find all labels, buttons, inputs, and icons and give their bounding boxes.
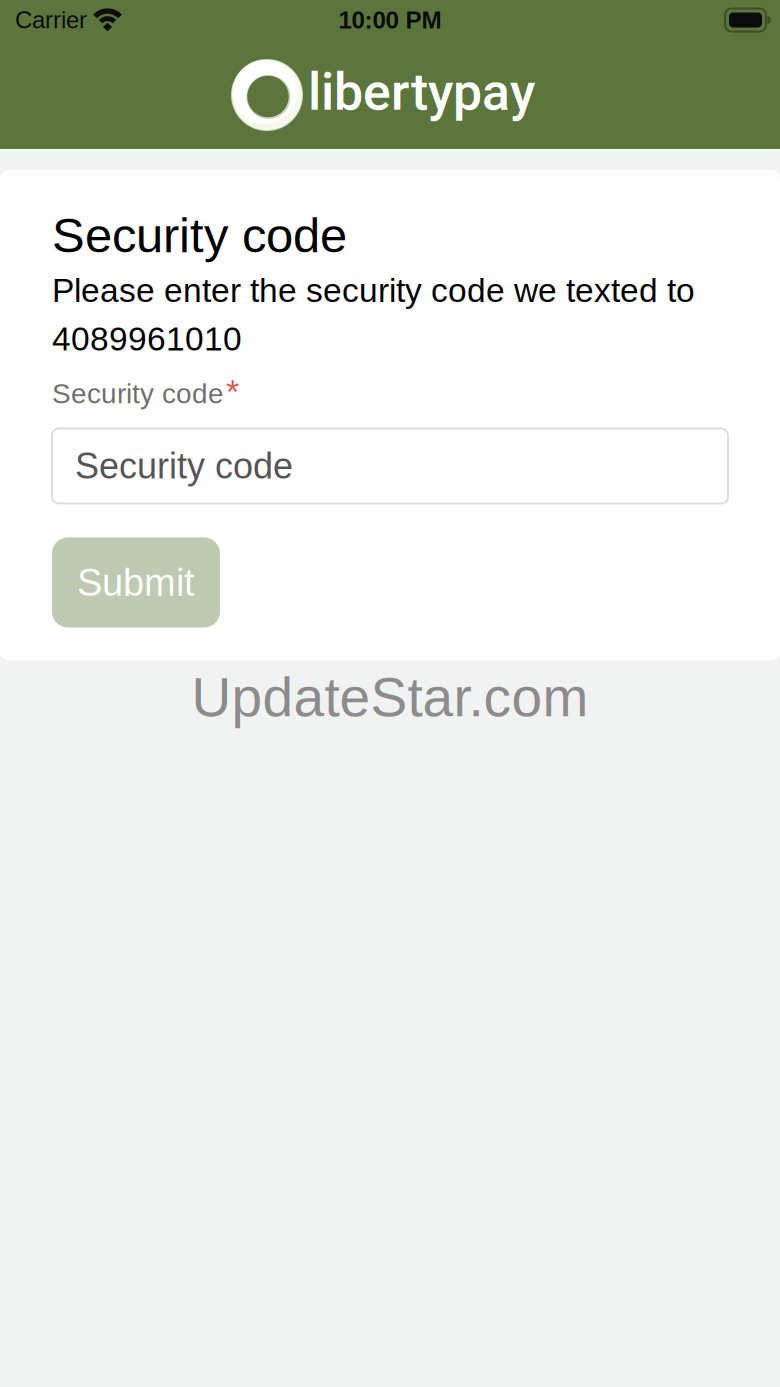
staticText: Carrier: [15, 7, 87, 33]
staticText: Submit: [77, 561, 195, 604]
staticText: Security code: [52, 378, 224, 409]
staticText: *: [226, 372, 239, 410]
staticText: Security code: [75, 446, 293, 486]
staticText: libertypay: [308, 62, 535, 122]
button[interactable]: Submit: [52, 537, 220, 627]
staticText: UpdateStar.com: [191, 666, 588, 728]
staticText: Security code: [52, 208, 347, 263]
staticText: 10:00 PM: [338, 6, 441, 33]
staticText: Please enter the security code we texted…: [52, 272, 695, 357]
